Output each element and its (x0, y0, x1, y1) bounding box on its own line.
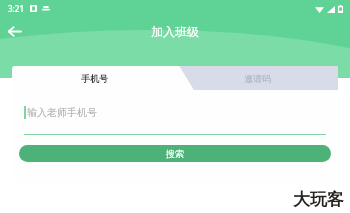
staticText: 大玩客 (293, 189, 344, 210)
button[interactable]: 搜索 (19, 145, 331, 162)
button[interactable]: 手机号 (12, 66, 177, 90)
staticText: 邀请码 (244, 73, 271, 84)
button[interactable]: 邀请码 (177, 66, 338, 90)
staticText: 3:21 (8, 3, 24, 14)
staticText: 输入老师手机号 (27, 106, 97, 119)
button[interactable]: 输入老师手机号 (24, 90, 326, 134)
staticText: 手机号 (81, 73, 108, 84)
staticText: 加入班级 (151, 24, 199, 39)
staticText: 搜索 (166, 148, 184, 159)
button[interactable]: Back (0, 17, 28, 45)
